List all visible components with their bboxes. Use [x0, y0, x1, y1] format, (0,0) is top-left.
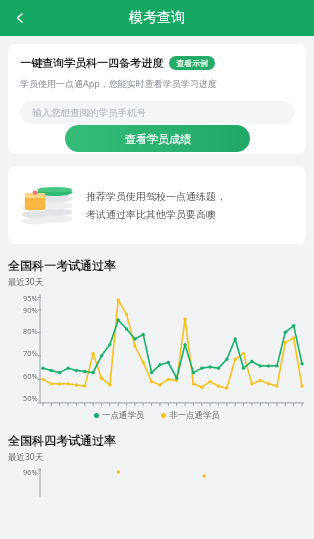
- staticText: 非一点通学员: [169, 410, 220, 421]
- button[interactable]: 查看学员成绩: [65, 125, 250, 152]
- staticText: 96%: [23, 467, 38, 477]
- button[interactable]: 查看示例: [169, 56, 215, 70]
- staticText: 查看学员成绩: [125, 132, 191, 146]
- staticText: 60%: [23, 371, 38, 381]
- staticText: 查看示例: [176, 58, 208, 68]
- staticText: 最近30天: [8, 451, 44, 463]
- button[interactable]: 推荐学员使用驾校一点通练题，: [8, 166, 306, 244]
- staticText: 学员使用一点通App，您能实时查看学员学习进度: [20, 77, 217, 89]
- staticText: 全国科四考试通过率: [8, 433, 116, 448]
- staticText: 70%: [23, 348, 38, 358]
- staticText: 80%: [23, 326, 38, 336]
- staticText: 最近30天: [8, 276, 44, 288]
- staticText: 模考查询: [129, 9, 185, 27]
- staticText: 考试通过率比其他学员要高噢: [86, 208, 216, 221]
- staticText: 50%: [23, 393, 38, 403]
- button[interactable]: Back: [4, 2, 36, 34]
- staticText: 95%: [23, 293, 38, 303]
- staticText: 一键查询学员科一四备考进度: [20, 56, 163, 70]
- button[interactable]: 输入您想查阅的学员手机号: [20, 101, 294, 124]
- staticText: 输入您想查阅的学员手机号: [32, 107, 146, 119]
- staticText: 推荐学员使用驾校一点通练题，: [86, 190, 226, 203]
- staticText: 90%: [23, 305, 38, 315]
- staticText: 全国科一考试通过率: [8, 258, 116, 273]
- staticText: 一点通学员: [102, 410, 145, 421]
